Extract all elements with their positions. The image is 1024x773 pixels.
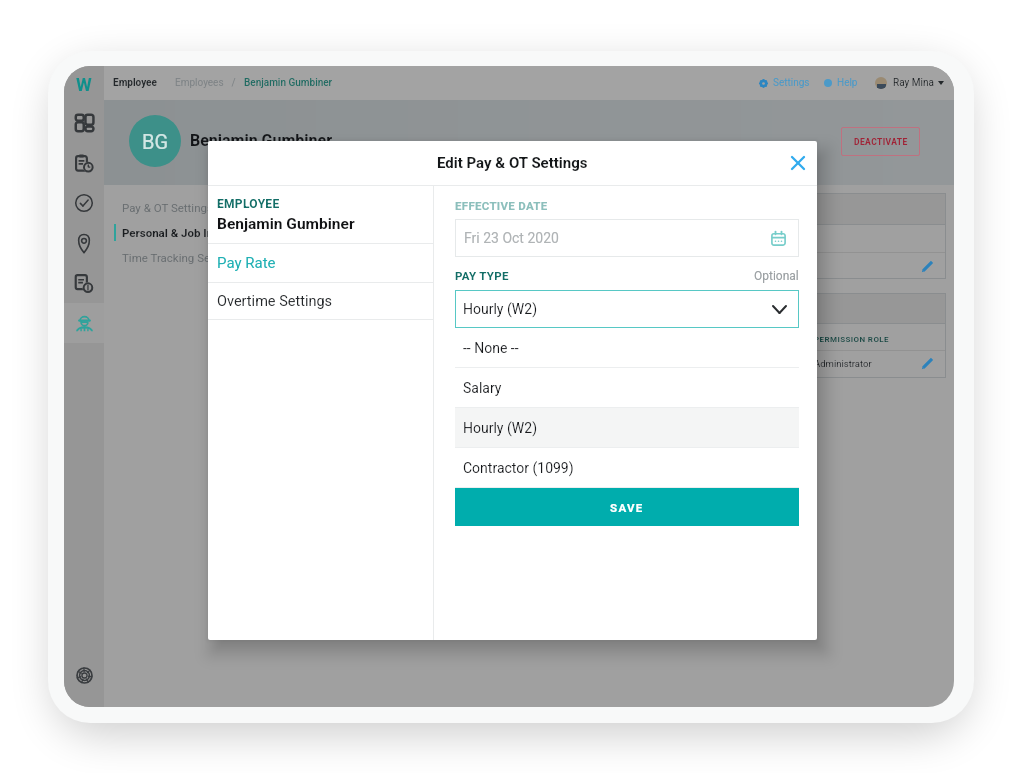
staticText: Ray Mina <box>893 77 934 89</box>
staticText: EMPLOYEE <box>217 197 280 211</box>
staticText: Operations <box>527 358 574 369</box>
button[interactable]: Dashboard <box>64 103 104 143</box>
button[interactable]: Approvals <box>64 183 104 223</box>
button[interactable]: Payroll <box>64 263 104 303</box>
staticText: Benjamin Gumbiner <box>244 77 333 89</box>
staticText: Personal & Job Info <box>122 226 224 239</box>
button[interactable]: Ray Mina <box>875 77 944 89</box>
button[interactable]: Salary <box>455 368 799 408</box>
staticText: / <box>224 77 244 89</box>
staticText: Hourly (W2) <box>463 301 538 317</box>
button[interactable]: Settings <box>759 77 810 89</box>
staticText: -- None -- <box>463 340 519 356</box>
button[interactable]: Hourly (W2) <box>455 290 799 328</box>
staticText: PERMISSION ROLE <box>814 335 889 344</box>
button[interactable]: DEACTIVATE <box>841 127 920 156</box>
staticText: SAVE <box>610 501 644 514</box>
button[interactable]: Close <box>787 152 809 174</box>
staticText: Employee <box>113 77 157 89</box>
staticText: Salary <box>463 380 502 396</box>
staticText: W <box>76 74 92 95</box>
staticText: BG <box>142 130 169 153</box>
staticText: Pay & OT Settings <box>122 201 213 214</box>
button[interactable]: Timesheets <box>64 143 104 183</box>
button[interactable]: -- None -- <box>455 328 799 368</box>
staticText: Optional <box>754 269 799 283</box>
staticText: Technician <box>671 358 717 369</box>
staticText: Time Tracking Settings <box>122 251 240 264</box>
staticText: Edit Pay & OT Settings <box>437 154 588 172</box>
button[interactable]: Pay Rate <box>208 244 433 282</box>
staticText: DEACTIVATE <box>854 137 908 147</box>
button[interactable]: Overtime Settings <box>208 283 433 319</box>
button[interactable]: Time Tracking Settings <box>104 245 304 270</box>
staticText: Pay Rate <box>217 254 276 272</box>
button[interactable]: Personal & Job Info <box>104 220 304 245</box>
button[interactable]: Hourly (W2) <box>455 408 799 448</box>
staticText: Benjamin Gumbiner <box>190 131 333 150</box>
staticText: Hourly (W2) <box>463 420 538 436</box>
staticText: EMPLOYMENT TYPE <box>527 230 608 239</box>
button[interactable]: Fri 23 Oct 2020 <box>455 219 799 257</box>
staticText: Help <box>837 77 858 89</box>
button[interactable]: Help <box>824 77 858 89</box>
staticText: PAY TYPE <box>455 269 509 282</box>
staticText: Benjamin Gumbiner <box>217 215 355 233</box>
button[interactable]: Locations <box>64 223 104 263</box>
staticText: Administrator <box>814 358 872 369</box>
staticText: Settings <box>773 77 810 89</box>
button[interactable]: Workers <box>64 303 104 343</box>
staticText: Fri 23 Oct 2020 <box>464 230 559 246</box>
button[interactable]: Contractor (1099) <box>455 448 799 488</box>
button[interactable]: Edit <box>920 356 935 371</box>
button[interactable]: SAVE <box>455 488 799 526</box>
staticText: EFFECTIVE DATE <box>455 199 548 212</box>
staticText: Overtime Settings <box>217 293 333 310</box>
button[interactable]: Settings <box>71 662 97 688</box>
staticText: Employees <box>175 77 224 89</box>
button[interactable]: Edit <box>920 259 935 274</box>
button[interactable]: Pay & OT Settings <box>104 195 304 220</box>
staticText: Contractor (1099) <box>463 460 574 476</box>
